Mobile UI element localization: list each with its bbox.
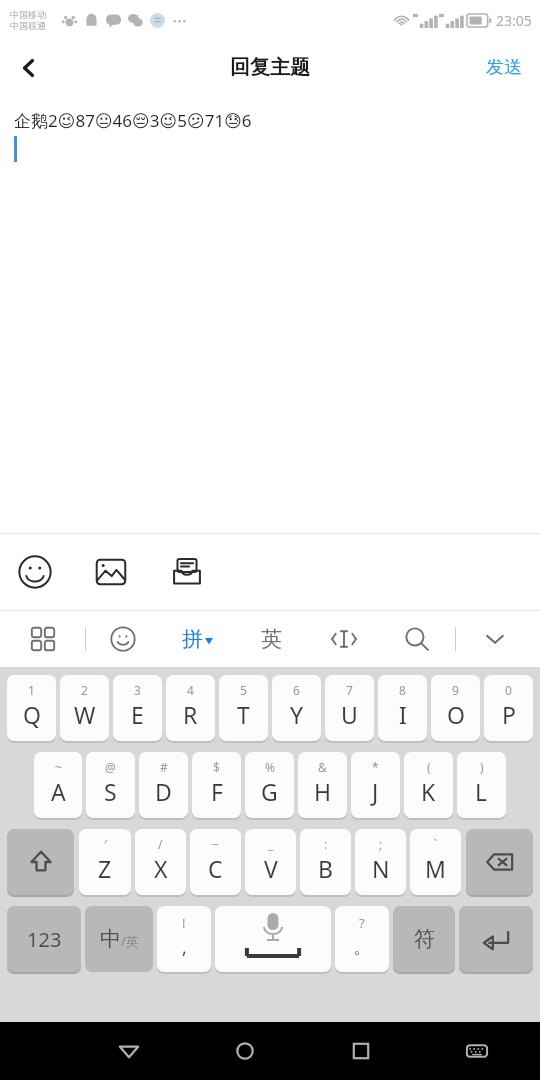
staticText: ` [434, 836, 438, 852]
staticText: V [264, 853, 278, 884]
staticText: A [51, 776, 66, 807]
staticText: 发送 [486, 56, 522, 79]
button[interactable]: ) [457, 752, 506, 818]
staticText: S [104, 776, 117, 807]
staticText: 回复主题 [230, 55, 310, 80]
button[interactable]: ; [355, 829, 406, 895]
button[interactable]: Move cursor [320, 615, 368, 663]
button[interactable]: 8 [378, 675, 427, 741]
button[interactable]: − [190, 829, 241, 895]
staticText: P [502, 699, 516, 730]
button[interactable]: $ [192, 752, 241, 818]
button[interactable]: ′ [79, 829, 131, 895]
button[interactable]: Hide keyboard [471, 615, 519, 663]
button[interactable]: 123 [7, 906, 81, 972]
staticText: O [447, 699, 465, 730]
staticText: ′ [104, 836, 107, 852]
staticText: ? [359, 914, 365, 932]
staticText: 中国联通 [10, 20, 46, 31]
staticText: − [212, 836, 219, 852]
staticText: 6 [293, 682, 300, 698]
staticText: C [208, 853, 223, 884]
button[interactable]: Image [90, 551, 132, 593]
staticText: % [265, 759, 275, 775]
button[interactable]: 4 [166, 675, 215, 741]
button[interactable]: 中 [85, 906, 153, 972]
button[interactable]: Inbox [166, 551, 208, 593]
staticText: J [372, 776, 379, 807]
button[interactable]: Keyboard layouts [19, 615, 67, 663]
button[interactable]: % [245, 752, 294, 818]
staticText: 符 [414, 926, 435, 952]
button[interactable]: Back [0, 40, 58, 95]
button[interactable]: & [298, 752, 347, 818]
button[interactable]: 3 [113, 675, 162, 741]
staticText: R [183, 699, 198, 730]
staticText: M [425, 853, 446, 884]
button[interactable]: 0 [484, 675, 533, 741]
staticText: 3 [134, 682, 141, 698]
button[interactable]: 英 [245, 613, 297, 665]
staticText: 英 [261, 626, 282, 652]
staticText: ; [379, 836, 383, 852]
button[interactable]: Space [215, 906, 331, 972]
staticText: 7 [346, 682, 353, 698]
button[interactable]: 拼 [171, 613, 223, 665]
staticText: X [154, 853, 168, 884]
staticText: 8 [399, 682, 406, 698]
button[interactable]: ` [410, 829, 461, 895]
staticText: I [399, 699, 407, 730]
button[interactable]: # [139, 752, 188, 818]
button[interactable]: Enter [459, 906, 533, 972]
button[interactable]: : [300, 829, 351, 895]
button[interactable]: 2 [60, 675, 109, 741]
staticText: # [160, 759, 168, 775]
button[interactable]: Keyboard [448, 1022, 506, 1080]
staticText: & [318, 759, 327, 775]
staticText: D [155, 776, 172, 807]
staticText: / [158, 836, 163, 852]
button[interactable]: @ [86, 752, 135, 818]
button[interactable]: Backspace [466, 829, 533, 895]
button[interactable]: 5 [219, 675, 268, 741]
staticText: F [211, 776, 223, 807]
button[interactable]: Recents [332, 1022, 390, 1080]
staticText: 拼 [182, 626, 203, 652]
staticText: 5 [240, 682, 247, 698]
button[interactable]: Emoji [99, 615, 147, 663]
button[interactable]: Emoji [14, 551, 56, 593]
staticText: ~ [55, 759, 62, 775]
button[interactable]: 9 [431, 675, 480, 741]
button[interactable]: 6 [272, 675, 321, 741]
staticText: U [341, 699, 358, 730]
staticText: H [314, 776, 332, 807]
button[interactable]: Search [393, 615, 441, 663]
staticText: K [421, 776, 436, 807]
staticText: : [324, 836, 328, 852]
button[interactable]: ( [404, 752, 453, 818]
button[interactable]: Home [216, 1022, 274, 1080]
staticText: N [372, 853, 390, 884]
staticText: 中国移动 [10, 9, 46, 20]
staticText: L [475, 776, 488, 807]
staticText: 2 [81, 682, 88, 698]
button[interactable]: 发送 [468, 40, 540, 95]
staticText: B [318, 853, 333, 884]
staticText: , [182, 935, 187, 960]
button[interactable]: 1 [7, 675, 56, 741]
button[interactable]: ? [335, 906, 389, 972]
staticText: E [131, 699, 144, 730]
button[interactable]: Shift [7, 829, 74, 895]
button[interactable]: * [351, 752, 400, 818]
button[interactable]: 符 [393, 906, 455, 972]
button[interactable]: ~ [34, 752, 82, 818]
button[interactable]: _ [245, 829, 296, 895]
staticText: 中 [100, 926, 121, 952]
staticText: * [372, 759, 379, 775]
button[interactable]: 7 [325, 675, 374, 741]
button[interactable]: ! [157, 906, 211, 972]
button[interactable]: Back [100, 1022, 158, 1080]
button[interactable]: / [135, 829, 186, 895]
staticText: Y [290, 699, 304, 730]
staticText: @ [105, 759, 116, 775]
